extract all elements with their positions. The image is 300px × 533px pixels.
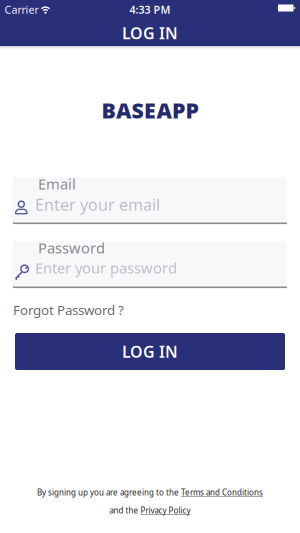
- staticText: 4:33 PM: [129, 2, 170, 17]
- staticText: Enter your password: [35, 258, 177, 277]
- staticText: BASEAPP: [101, 96, 198, 124]
- button[interactable]: Email: [13, 177, 287, 224]
- button[interactable]: LOG IN: [15, 333, 285, 370]
- staticText: LOG IN: [122, 22, 178, 44]
- staticText: Password: [38, 238, 105, 257]
- staticText: Email: [38, 174, 76, 193]
- staticText: Enter your email: [35, 194, 160, 215]
- staticText: By signing up you are agreeing to the Te…: [37, 487, 263, 498]
- staticText: Forgot Password ?: [13, 301, 124, 319]
- staticText: LOG IN: [122, 341, 178, 362]
- button[interactable]: Password: [13, 241, 287, 288]
- button[interactable]: and the Privacy Policy: [0, 505, 300, 516]
- staticText: and the Privacy Policy: [109, 505, 190, 516]
- button[interactable]: By signing up you are agreeing to the Te…: [0, 487, 300, 498]
- button[interactable]: Forgot Password ?: [13, 301, 124, 319]
- staticText: Carrier: [4, 2, 38, 17]
